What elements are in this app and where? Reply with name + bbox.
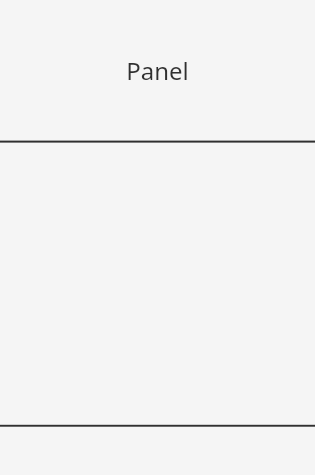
- button[interactable]: Panel: [0, 0, 315, 141]
- staticText: Panel: [126, 54, 189, 87]
